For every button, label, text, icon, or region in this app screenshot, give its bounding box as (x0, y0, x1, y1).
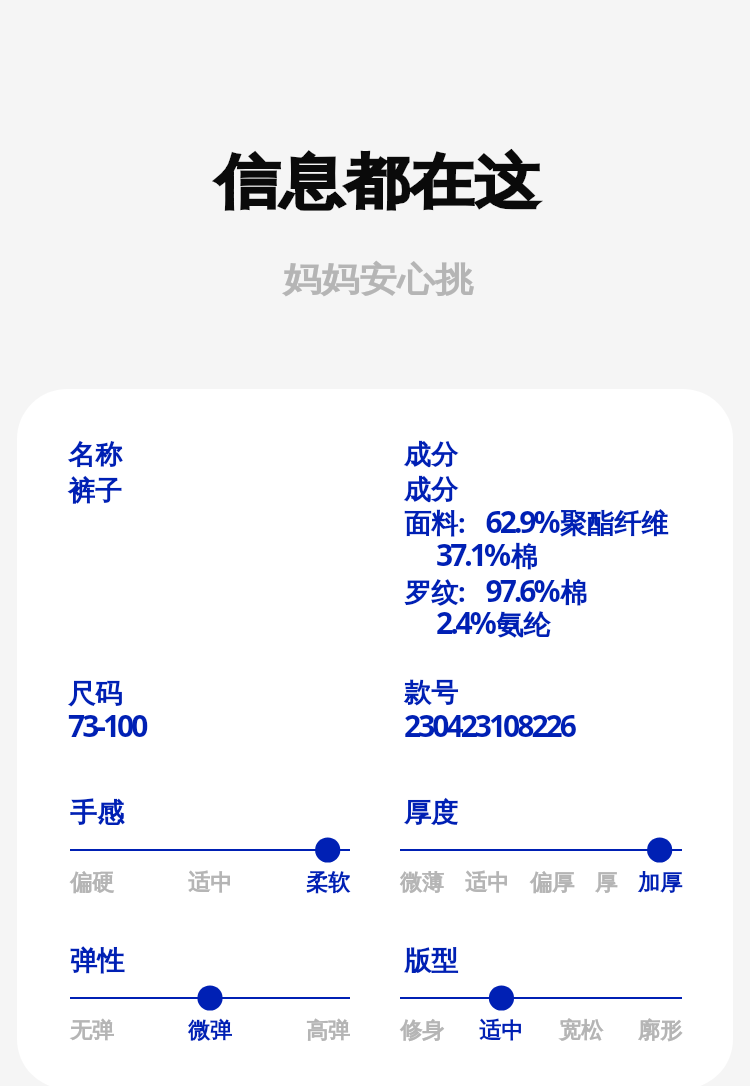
staticText: 廓形 (638, 1017, 682, 1045)
staticText: 修身 (400, 1017, 444, 1045)
staticText: 弹性 (70, 944, 124, 978)
staticText: 柔软 (306, 869, 350, 897)
staticText: 宽松 (559, 1017, 603, 1045)
staticText: 适中 (465, 869, 509, 897)
button[interactable]: 廓形 (638, 1017, 682, 1045)
staticText: 版型 (404, 944, 458, 978)
staticText: 2.4%氨纶 (436, 602, 551, 643)
staticText: 230423108226 (404, 705, 577, 746)
button[interactable]: 名称 裤子 (65, 430, 395, 675)
staticText: 手感 (70, 796, 124, 830)
button[interactable]: 修身 (400, 1017, 444, 1045)
button[interactable]: 厚 (595, 869, 617, 897)
button[interactable]: 微弹 (188, 1017, 232, 1045)
staticText: 高弹 (306, 1017, 350, 1045)
button[interactable]: 手感 (70, 798, 350, 898)
staticText: 成分 (404, 438, 458, 472)
button[interactable]: 适中 (465, 869, 509, 897)
staticText: 73-100 (68, 705, 148, 746)
button[interactable]: 偏厚 (530, 869, 574, 897)
staticText: 加厚 (638, 869, 682, 897)
button[interactable]: 版型 (400, 946, 682, 1046)
button[interactable]: 弹性 (70, 946, 350, 1046)
staticText: 罗纹:97.6%棉 (404, 570, 588, 611)
staticText: 偏厚 (530, 869, 574, 897)
staticText: 偏硬 (70, 869, 114, 897)
staticText: 微弹 (188, 1017, 232, 1045)
button[interactable]: 款号 230423108226 (401, 670, 701, 745)
button[interactable]: 无弹 (70, 1017, 114, 1045)
staticText: 裤子 (68, 474, 122, 508)
button[interactable]: 适中 (188, 869, 232, 897)
staticText: 面料:62.9%聚酯纤维 (404, 501, 669, 542)
staticText: 厚度 (404, 796, 458, 830)
button[interactable]: 厚度 (400, 798, 682, 898)
staticText: 厚 (595, 869, 617, 897)
staticText: 尺码 (68, 677, 122, 711)
staticText: 微薄 (400, 869, 444, 897)
staticText: 无弹 (70, 1017, 114, 1045)
button[interactable]: 宽松 (559, 1017, 603, 1045)
staticText: 款号 (404, 676, 458, 710)
button[interactable]: 高弹 (306, 1017, 350, 1045)
staticText: 适中 (479, 1017, 523, 1045)
button[interactable]: 偏硬 (70, 869, 114, 897)
button[interactable]: 微薄 (400, 869, 444, 897)
button[interactable]: 适中 (479, 1017, 523, 1045)
button[interactable]: 加厚 (638, 869, 682, 897)
staticText: 信息都在这 (0, 146, 750, 219)
staticText: 成分 (404, 473, 458, 507)
staticText: 适中 (188, 869, 232, 897)
button[interactable]: 成分 面料 62.9%聚酯纤维 37.1%棉 罗纹 97.6%棉 2.4%氨纶 (401, 430, 701, 675)
staticText: 37.1%棉 (436, 534, 538, 575)
button[interactable]: 尺码 73-100 (65, 670, 395, 745)
staticText: 名称 (68, 438, 122, 472)
staticText: 妈妈安心挑 (3, 258, 750, 300)
button[interactable]: 柔软 (306, 869, 350, 897)
